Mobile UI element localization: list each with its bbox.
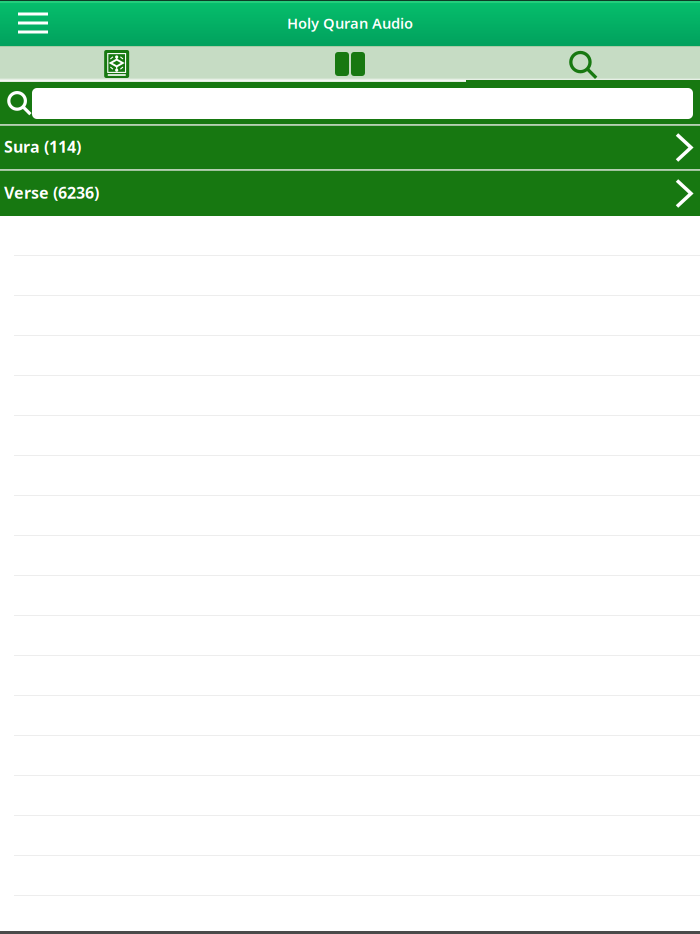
button[interactable]: Read <box>233 46 467 82</box>
button[interactable]: Verse (6236) <box>0 171 700 216</box>
staticText: Verse (6236) <box>4 182 99 203</box>
button[interactable]: Sura (114) <box>0 126 700 169</box>
button[interactable]: Quran <box>0 46 233 82</box>
button[interactable]: Search <box>467 46 700 82</box>
staticText: Holy Quran Audio <box>287 13 413 33</box>
staticText: Sura (114) <box>4 136 81 157</box>
button[interactable]: Menu <box>0 0 66 46</box>
